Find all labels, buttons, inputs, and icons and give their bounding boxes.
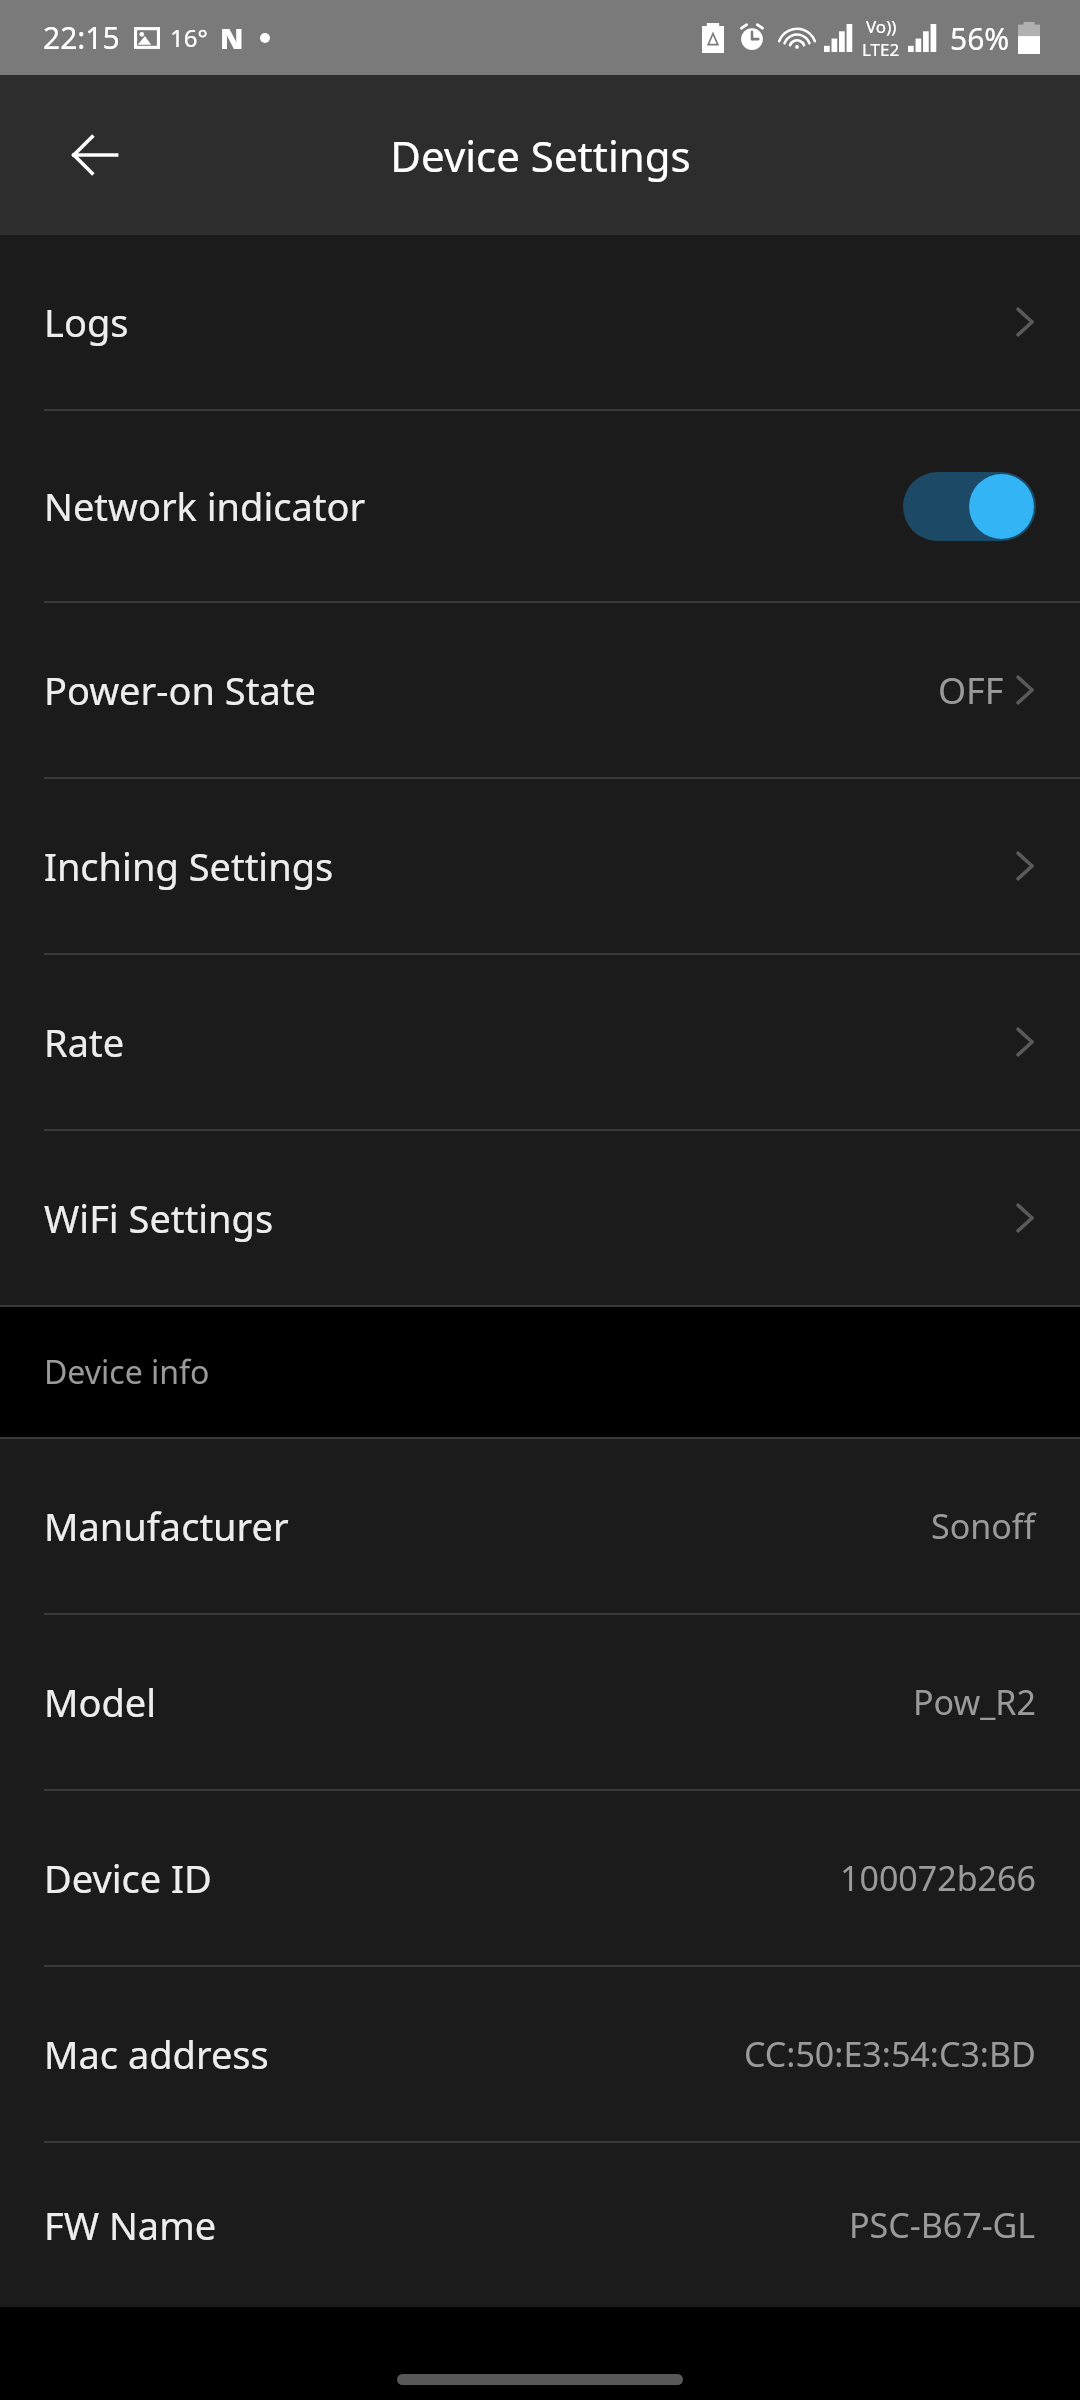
staticText: PSC-B67-GL bbox=[849, 2202, 1036, 2248]
staticText: N bbox=[220, 19, 244, 57]
staticText: WiFi Settings bbox=[44, 1192, 274, 1244]
button[interactable]: Mac address bbox=[0, 1967, 1080, 2141]
staticText: Device info bbox=[44, 1350, 210, 1394]
button[interactable]: Power-on State bbox=[0, 603, 1080, 777]
staticText: OFF bbox=[938, 666, 1004, 715]
staticText: Rate bbox=[44, 1016, 125, 1068]
button[interactable]: Device ID bbox=[0, 1791, 1080, 1965]
button[interactable]: Logs bbox=[0, 235, 1080, 409]
staticText: Device Settings bbox=[390, 127, 691, 184]
staticText: 22:15 bbox=[43, 17, 120, 58]
staticText: Logs bbox=[44, 296, 129, 348]
button[interactable]: Manufacturer bbox=[0, 1439, 1080, 1613]
button[interactable]: FW Name bbox=[0, 2143, 1080, 2307]
staticText: Network indicator bbox=[44, 480, 366, 532]
button[interactable]: Inching Settings bbox=[0, 779, 1080, 953]
staticText: Inching Settings bbox=[44, 840, 334, 892]
staticText: Sonoff bbox=[931, 1503, 1036, 1549]
staticText: 100072b266 bbox=[840, 1855, 1036, 1901]
staticText: LTE2 bbox=[862, 38, 900, 61]
staticText: Vo)) bbox=[866, 15, 897, 38]
button[interactable]: WiFi Settings bbox=[0, 1131, 1080, 1305]
staticText: Mac address bbox=[44, 2028, 269, 2080]
staticText: Pow_R2 bbox=[913, 1679, 1036, 1725]
button[interactable]: Model bbox=[0, 1615, 1080, 1789]
button[interactable]: Back bbox=[52, 112, 138, 198]
staticText: FW Name bbox=[44, 2199, 217, 2251]
staticText: 56% bbox=[950, 18, 1010, 59]
staticText: Power-on State bbox=[44, 664, 316, 716]
staticText: CC:50:E3:54:C3:BD bbox=[744, 2031, 1036, 2077]
button[interactable]: Rate bbox=[0, 955, 1080, 1129]
staticText: Manufacturer bbox=[44, 1500, 289, 1552]
staticText: 16° bbox=[170, 21, 208, 54]
staticText: Model bbox=[44, 1676, 157, 1728]
button[interactable]: Network indicator bbox=[0, 411, 1080, 601]
staticText: Device ID bbox=[44, 1852, 212, 1904]
